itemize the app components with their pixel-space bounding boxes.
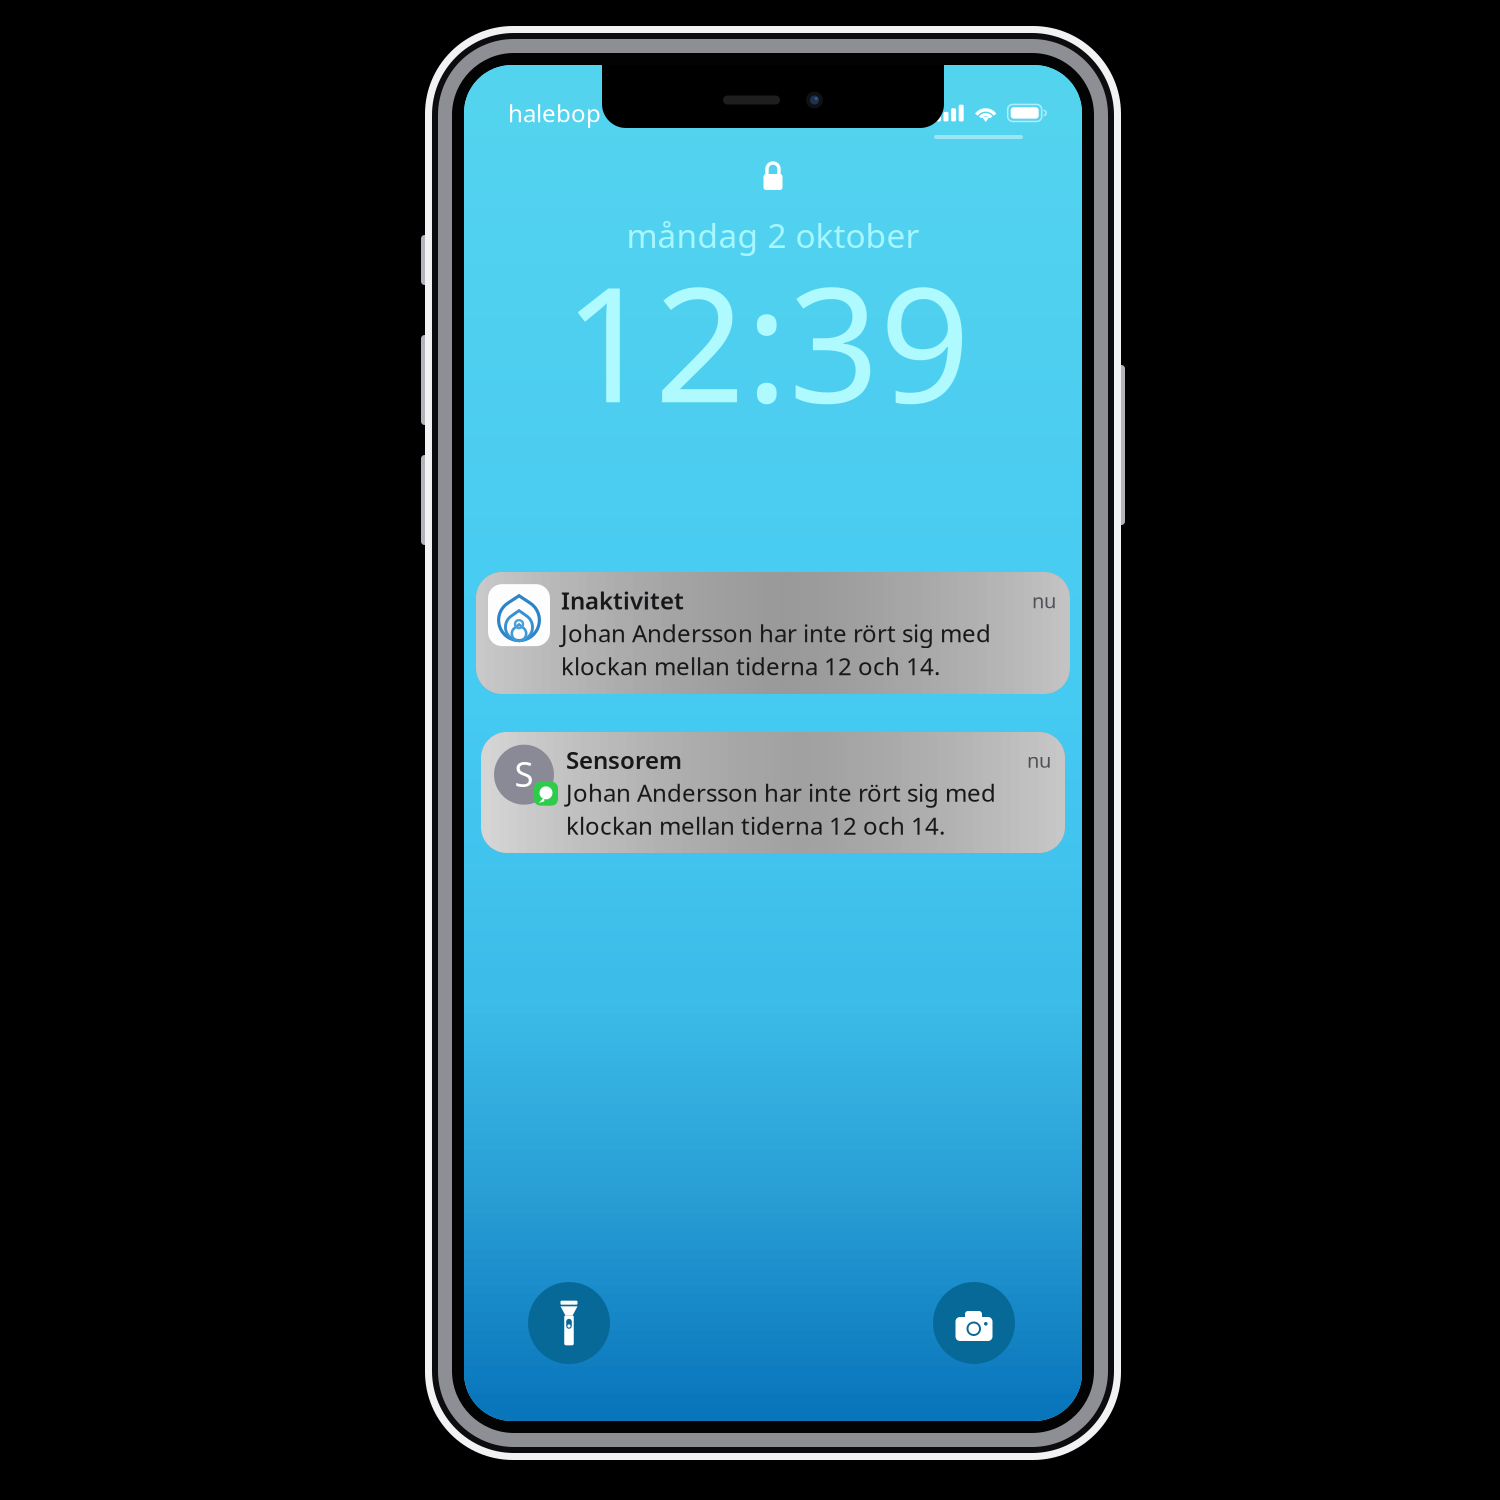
button[interactable]: Inaktivitet [476, 572, 1070, 694]
staticText: nu [1027, 747, 1051, 773]
staticText: halebop [508, 97, 601, 129]
staticText: nu [1032, 587, 1056, 614]
staticText: S [514, 751, 533, 797]
button[interactable]: Camera [933, 1282, 1015, 1364]
staticText: måndag 2 oktober [626, 213, 919, 257]
staticText: klockan mellan tiderna 12 och 14. [561, 650, 940, 682]
staticText: 12:39 [563, 235, 970, 446]
staticText: Johan Andersson har inte rört sig med [566, 776, 996, 808]
staticText: Inaktivitet [561, 584, 684, 616]
staticText: klockan mellan tiderna 12 och 14. [566, 809, 945, 841]
button[interactable]: Flashlight [528, 1282, 610, 1364]
staticText: Johan Andersson har inte rört sig med [561, 617, 991, 649]
button[interactable]: S [481, 732, 1065, 853]
staticText: Sensorem [566, 744, 682, 776]
